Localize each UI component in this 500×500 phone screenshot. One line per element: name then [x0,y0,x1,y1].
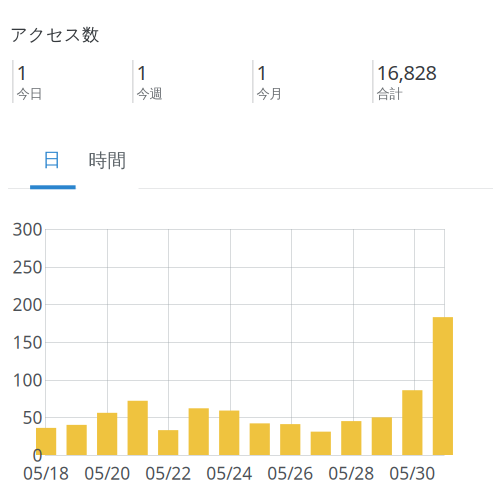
staticText: 05/28 [328,461,374,484]
staticText: アクセス数 [10,24,99,45]
staticText: 05/22 [145,461,191,484]
staticText: 250 [12,255,42,278]
staticText: 合計 [376,85,402,102]
staticText: 05/18 [23,461,69,484]
staticText: 05/30 [389,461,435,484]
staticText: 05/20 [84,461,130,484]
staticText: 今週 [136,85,162,102]
staticText: 100 [12,368,42,391]
staticText: 0 [32,443,42,466]
staticText: 150 [12,330,42,353]
staticText: 300 [12,217,42,240]
staticText: 1 [16,59,27,86]
staticText: 200 [12,293,42,316]
staticText: 日 [43,148,62,171]
staticText: 05/24 [206,461,252,484]
staticText: 今日 [16,85,42,102]
button[interactable]: 日 [31,144,76,192]
button[interactable]: 時間 [76,144,138,192]
staticText: 1 [136,59,147,86]
staticText: 時間 [88,149,126,172]
staticText: 16,828 [376,59,436,86]
staticText: 05/26 [267,461,313,484]
staticText: 今月 [256,85,282,102]
staticText: 50 [22,406,42,429]
staticText: 1 [256,59,267,86]
